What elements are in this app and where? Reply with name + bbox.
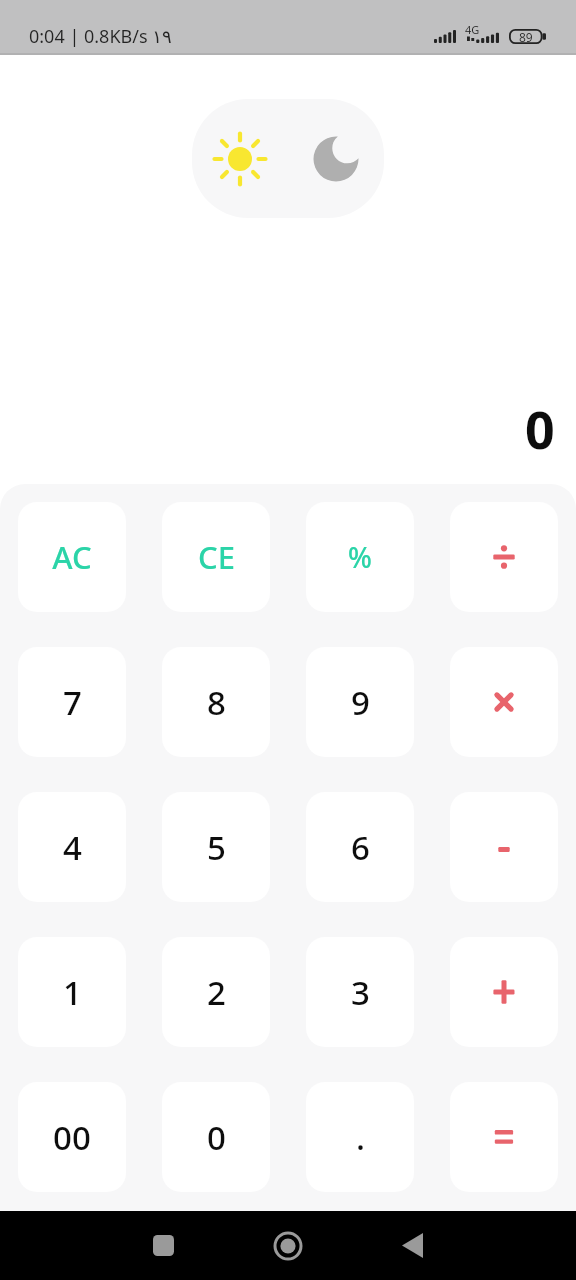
staticText: 89	[519, 29, 533, 44]
staticText: AC	[52, 536, 92, 578]
staticText: 0	[207, 1115, 226, 1160]
staticText: 3	[351, 970, 370, 1015]
staticText: 1	[63, 970, 82, 1015]
staticText: 8	[207, 680, 226, 725]
button[interactable]: 2	[162, 937, 270, 1047]
button[interactable]: %	[306, 502, 414, 612]
staticText: 5	[207, 825, 226, 870]
button[interactable]: Recents	[101, 1211, 225, 1280]
button[interactable]: 4	[18, 792, 126, 902]
staticText: CE	[198, 536, 235, 578]
button[interactable]: 00	[18, 1082, 126, 1192]
button[interactable]: 3	[306, 937, 414, 1047]
staticText: 4G	[465, 22, 480, 37]
button[interactable]: AC	[18, 502, 126, 612]
staticText: 2	[207, 970, 226, 1015]
button[interactable]: Light theme	[192, 99, 288, 218]
button[interactable]: Home	[226, 1211, 350, 1280]
button[interactable]: Equals	[450, 1082, 558, 1192]
staticText: 00	[53, 1115, 91, 1160]
button[interactable]: 6	[306, 792, 414, 902]
button[interactable]: 9	[306, 647, 414, 757]
button[interactable]: .	[306, 1082, 414, 1192]
staticText: 6	[351, 825, 370, 870]
button[interactable]: Subtract	[450, 792, 558, 902]
button[interactable]: Light theme	[192, 99, 384, 218]
button[interactable]: 0	[162, 1082, 270, 1192]
button[interactable]: Add	[450, 937, 558, 1047]
staticText: 0	[525, 393, 555, 464]
button[interactable]: Back	[350, 1211, 474, 1280]
staticText: 4	[63, 825, 82, 870]
staticText: 7	[63, 680, 82, 725]
staticText: %	[348, 538, 372, 576]
staticText: 0:04 | 0.8KB/s ١٩	[29, 24, 172, 49]
button[interactable]: 5	[162, 792, 270, 902]
button[interactable]: Divide	[450, 502, 558, 612]
button[interactable]: Dark theme	[288, 99, 384, 218]
button[interactable]: CE	[162, 502, 270, 612]
button[interactable]: 8	[162, 647, 270, 757]
staticText: 9	[351, 680, 370, 725]
button[interactable]: Multiply	[450, 647, 558, 757]
staticText: .	[356, 1115, 365, 1160]
button[interactable]: 7	[18, 647, 126, 757]
button[interactable]: 1	[18, 937, 126, 1047]
